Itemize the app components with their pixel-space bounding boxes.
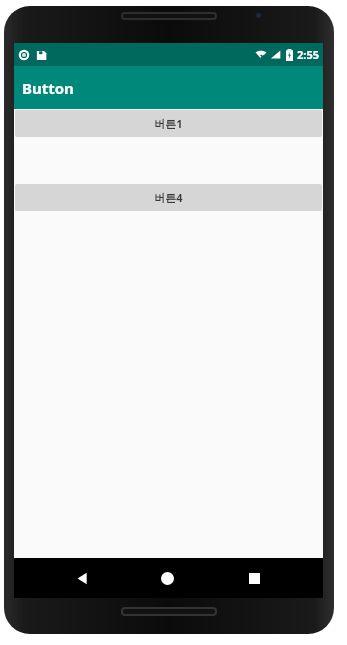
staticText: 버튼4: [154, 190, 183, 205]
button[interactable]: 버튼1: [15, 110, 322, 137]
button[interactable]: 버튼4: [15, 184, 322, 211]
button[interactable]: Recent apps: [240, 564, 268, 592]
button[interactable]: Home: [153, 564, 181, 592]
staticText: Button: [22, 78, 74, 98]
button[interactable]: Back: [68, 564, 96, 592]
staticText: 버튼1: [154, 116, 183, 131]
staticText: 2:55: [297, 47, 319, 62]
